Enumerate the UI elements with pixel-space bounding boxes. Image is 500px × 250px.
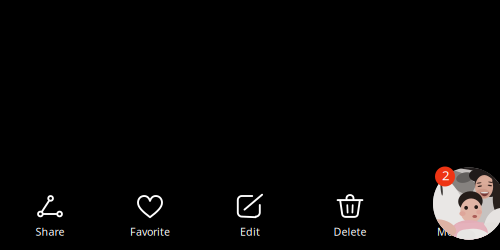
button[interactable]: More, 2 unread	[433, 166, 500, 239]
staticText: Favorite	[130, 224, 170, 239]
button[interactable]: Share	[0, 190, 100, 242]
staticText: 2	[442, 166, 450, 184]
staticText: Share	[35, 224, 64, 239]
button[interactable]: More	[400, 190, 500, 242]
button[interactable]: Favorite	[100, 190, 200, 242]
staticText: More	[437, 224, 463, 239]
staticText: Delete	[333, 224, 366, 239]
staticText: Edit	[240, 224, 260, 239]
button[interactable]: Delete	[300, 190, 400, 242]
button[interactable]: Edit	[200, 190, 300, 242]
